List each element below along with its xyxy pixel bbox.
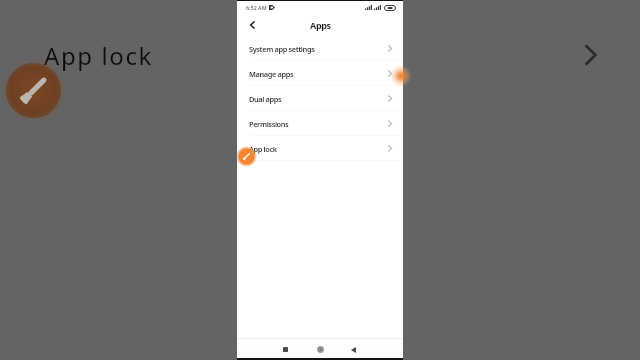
staticText: Apps xyxy=(310,19,331,31)
button[interactable]: Back xyxy=(345,341,362,358)
button[interactable]: Dual apps xyxy=(237,86,403,111)
button[interactable]: Home xyxy=(312,341,329,358)
button[interactable]: System app settings xyxy=(237,36,403,61)
button[interactable]: Permissions xyxy=(237,111,403,136)
staticText: Permissions xyxy=(249,119,289,129)
staticText: App lock xyxy=(249,144,277,154)
staticText: System app settings xyxy=(249,44,315,54)
staticText: 6:52 AM xyxy=(246,4,267,11)
button[interactable]: App lock xyxy=(237,136,403,161)
staticText: App lock xyxy=(44,39,153,72)
staticText: Dual apps xyxy=(249,94,282,104)
staticText: Manage apps xyxy=(249,69,294,79)
button[interactable]: Brush tool xyxy=(2,59,65,122)
button[interactable]: Recents xyxy=(277,341,294,358)
button[interactable]: Back xyxy=(243,16,261,34)
button[interactable]: Manage apps xyxy=(237,61,403,86)
button[interactable]: Next xyxy=(577,41,605,69)
